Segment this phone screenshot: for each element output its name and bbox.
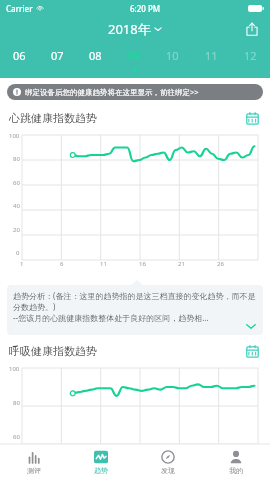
staticText: 2018年	[108, 20, 151, 38]
button[interactable]: 11	[192, 42, 231, 68]
button[interactable]: 12	[231, 42, 270, 68]
button[interactable]: Calendar	[243, 109, 261, 127]
staticText: 0	[16, 249, 20, 257]
button[interactable]: 06	[0, 42, 38, 68]
staticText: 80	[13, 155, 20, 163]
staticText: 11	[205, 48, 218, 63]
staticText: 08	[89, 48, 102, 63]
staticText: 心跳健康指数趋势	[9, 111, 97, 125]
staticText: 20	[13, 226, 20, 234]
staticText: 11	[100, 260, 107, 268]
staticText: 6:20 PM	[130, 3, 161, 14]
staticText: 测评	[27, 466, 41, 475]
staticText: 12	[244, 48, 257, 63]
staticText: 发现	[161, 466, 175, 475]
staticText: Carrier	[6, 3, 33, 14]
staticText: 呼吸健康指数趋势	[9, 344, 97, 358]
staticText: 100	[9, 365, 20, 373]
button[interactable]: 趋势分析：(备注：这里的趋势指的是这三档直接的变化趋势，而不是分数趋势。)	[7, 285, 263, 335]
staticText: 10	[166, 48, 179, 63]
staticText: 1	[20, 260, 24, 268]
staticText: 40	[13, 202, 20, 210]
staticText: 07	[51, 48, 64, 63]
staticText: 60	[13, 433, 20, 441]
staticText: 09	[127, 48, 140, 63]
staticText: 趋势	[94, 466, 108, 475]
staticText: 21	[178, 260, 185, 268]
button[interactable]: 08	[76, 42, 114, 68]
button[interactable]: 09	[114, 42, 153, 68]
staticText: 80	[13, 399, 20, 407]
staticText: 60	[13, 179, 20, 187]
staticText: 100	[9, 132, 20, 140]
staticText: 绑定设备后您的健康趋势将在这里显示，前往绑定>>	[25, 87, 199, 97]
button[interactable]: 我的	[202, 444, 270, 480]
button[interactable]: Share	[242, 19, 262, 39]
button[interactable]: 发现	[134, 444, 202, 480]
staticText: 趋势分析：(备注：这里的趋势指的是这三档直接的变化趋势，而不是分数趋势。)	[13, 290, 257, 312]
button[interactable]: 趋势	[67, 444, 134, 480]
button[interactable]: 2018年	[102, 18, 168, 40]
button[interactable]: 测评	[0, 444, 67, 480]
button[interactable]: 绑定设备后您的健康趋势将在这里显示，前往绑定>>	[7, 84, 263, 100]
staticText: 16	[139, 260, 146, 268]
staticText: 我的	[229, 466, 243, 475]
button[interactable]: Calendar	[243, 342, 261, 360]
staticText: 6	[60, 260, 64, 268]
staticText: 06	[13, 48, 26, 63]
staticText: 26	[217, 260, 224, 268]
staticText: --您该月的心跳健康指数整体处于良好的区间，趋势相...	[13, 312, 209, 323]
button[interactable]: 07	[38, 42, 76, 68]
button[interactable]: 10	[153, 42, 192, 68]
